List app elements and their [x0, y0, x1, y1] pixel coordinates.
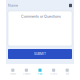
- button[interactable]: Post: [33, 64, 47, 80]
- staticText: Me: [66, 72, 69, 75]
- staticText: Post: [37, 72, 42, 75]
- staticText: Comments or Questions: [21, 14, 61, 19]
- button[interactable]: Alerts: [47, 64, 60, 80]
- button[interactable]: SUBMIT: [8, 49, 72, 59]
- button[interactable]: Me: [60, 64, 74, 80]
- button[interactable]: Search: [20, 64, 33, 80]
- staticText: Search: [23, 72, 30, 75]
- staticText: SUBMIT: [34, 52, 46, 56]
- staticText: Alerts: [50, 72, 57, 75]
- staticText: Home: [10, 72, 16, 75]
- button[interactable]: Home: [6, 64, 20, 80]
- staticText: Name: [8, 3, 18, 8]
